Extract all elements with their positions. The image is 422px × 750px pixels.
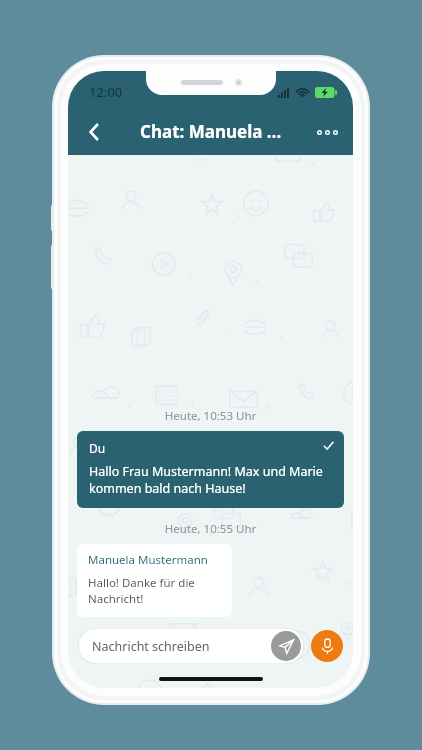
staticText: Manuela Mustermann — [88, 552, 208, 568]
button[interactable]: Zurück — [76, 113, 114, 151]
staticText: Nachricht schreiben — [92, 638, 210, 655]
staticText: Heute, 10:55 Uhr — [68, 521, 353, 537]
button[interactable]: Mehr Optionen — [309, 114, 345, 150]
button[interactable]: Sprachnachricht aufnehmen — [311, 630, 343, 662]
button[interactable]: Senden — [271, 631, 301, 661]
button[interactable]: Nachricht schreiben — [78, 628, 304, 664]
button[interactable]: Du — [77, 431, 344, 508]
staticText: Chat: Manuela … — [140, 120, 282, 143]
staticText: Du — [89, 440, 106, 456]
staticText: Heute, 10:53 Uhr — [68, 408, 353, 424]
staticText: Hallo! Danke für die Nachricht! — [88, 575, 222, 607]
staticText: 12:00 — [89, 83, 123, 101]
button[interactable]: Manuela Mustermann — [77, 544, 232, 617]
staticText: Hallo Frau Mustermann! Max und Marie kom… — [89, 463, 334, 497]
